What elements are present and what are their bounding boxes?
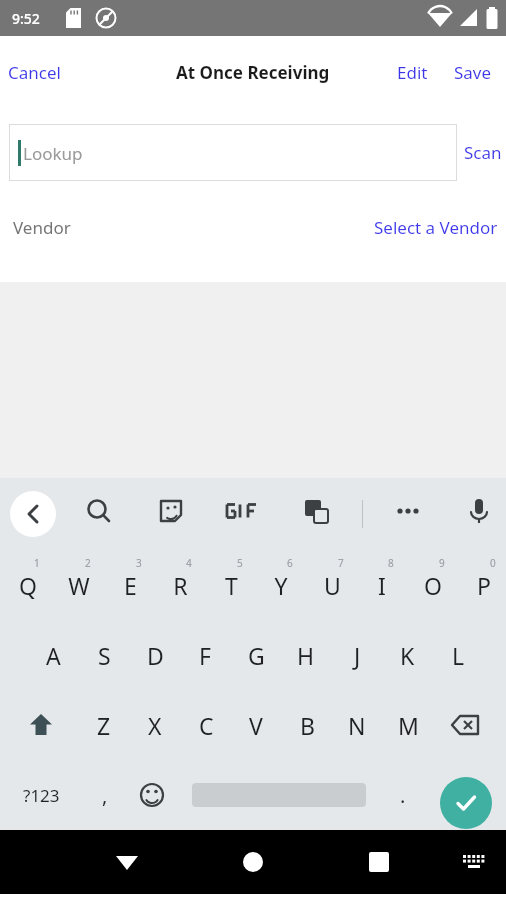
- button[interactable]: Done: [440, 777, 492, 829]
- button[interactable]: Q: [3, 550, 53, 620]
- button[interactable]: E: [105, 550, 155, 620]
- staticText: 1: [34, 556, 40, 570]
- staticText: I: [378, 570, 386, 601]
- button[interactable]: Hide keyboard: [101, 836, 153, 888]
- staticText: 8: [388, 556, 394, 570]
- staticText: 4: [186, 556, 192, 570]
- button[interactable]: GIF: [221, 490, 263, 532]
- button[interactable]: Recent apps: [353, 836, 405, 888]
- button[interactable]: Stickers: [150, 490, 192, 532]
- staticText: 7: [338, 556, 344, 570]
- staticText: 5: [237, 556, 243, 570]
- button[interactable]: Lookup: [9, 124, 457, 181]
- staticText: P: [477, 570, 491, 601]
- button[interactable]: W: [54, 550, 104, 620]
- staticText: A: [46, 640, 61, 671]
- button[interactable]: N: [332, 690, 382, 760]
- staticText: At Once Receiving: [176, 61, 330, 84]
- staticText: Select a Vendor: [374, 216, 498, 239]
- staticText: 3: [136, 556, 142, 570]
- staticText: 2: [85, 556, 91, 570]
- button[interactable]: B: [282, 690, 332, 760]
- button[interactable]: R: [155, 550, 205, 620]
- button[interactable]: C: [181, 690, 231, 760]
- staticText: Scan: [464, 141, 502, 164]
- button[interactable]: Y: [256, 550, 306, 620]
- button[interactable]: Shift: [16, 690, 66, 760]
- button[interactable]: V: [231, 690, 281, 760]
- staticText: D: [147, 640, 164, 671]
- button[interactable]: M: [383, 690, 433, 760]
- staticText: 6: [287, 556, 293, 570]
- staticText: K: [400, 640, 415, 671]
- staticText: Z: [97, 710, 111, 741]
- staticText: Edit: [397, 61, 428, 84]
- staticText: .: [400, 782, 406, 809]
- button[interactable]: Vendor: [9, 212, 75, 243]
- staticText: L: [452, 640, 465, 671]
- staticText: X: [148, 710, 162, 741]
- staticText: Save: [454, 61, 492, 84]
- button[interactable]: ,: [82, 760, 128, 830]
- staticText: T: [225, 570, 238, 601]
- staticText: E: [124, 570, 137, 601]
- button[interactable]: A: [28, 620, 78, 690]
- button[interactable]: H: [281, 620, 331, 690]
- staticText: G: [248, 640, 265, 671]
- button[interactable]: T: [206, 550, 256, 620]
- button[interactable]: Backspace: [440, 690, 490, 760]
- staticText: F: [199, 640, 211, 671]
- button[interactable]: Emoji: [129, 760, 175, 830]
- button[interactable]: Scan: [460, 124, 506, 181]
- staticText: H: [297, 640, 315, 671]
- staticText: U: [324, 570, 341, 601]
- staticText: 0: [490, 556, 496, 570]
- staticText: C: [199, 710, 214, 741]
- staticText: V: [249, 710, 263, 741]
- staticText: Y: [274, 570, 288, 601]
- staticText: ?123: [23, 784, 60, 807]
- button[interactable]: K: [382, 620, 432, 690]
- staticText: Q: [19, 570, 37, 601]
- staticText: B: [300, 710, 315, 741]
- staticText: J: [354, 640, 361, 671]
- staticText: N: [348, 710, 366, 741]
- button[interactable]: Select a Vendor: [370, 212, 502, 243]
- button[interactable]: Translate: [295, 490, 337, 532]
- button[interactable]: F: [180, 620, 230, 690]
- staticText: Lookup: [23, 142, 83, 165]
- button[interactable]: G: [231, 620, 281, 690]
- button[interactable]: Edit: [389, 53, 436, 92]
- button[interactable]: J: [332, 620, 382, 690]
- button[interactable]: ?123: [4, 760, 78, 830]
- button[interactable]: Home: [227, 836, 279, 888]
- button[interactable]: X: [130, 690, 180, 760]
- button[interactable]: Switch keyboard: [452, 840, 496, 884]
- button[interactable]: Close toolbar: [10, 491, 56, 537]
- button[interactable]: U: [307, 550, 357, 620]
- staticText: Cancel: [8, 61, 61, 84]
- staticText: O: [424, 570, 442, 601]
- button[interactable]: Z: [79, 690, 129, 760]
- button[interactable]: L: [433, 620, 483, 690]
- button[interactable]: .: [380, 760, 426, 830]
- button[interactable]: More options: [387, 490, 429, 532]
- button[interactable]: D: [130, 620, 180, 690]
- button[interactable]: S: [79, 620, 129, 690]
- staticText: Vendor: [13, 216, 71, 239]
- button[interactable]: Voice input: [458, 490, 500, 532]
- button[interactable]: P: [459, 550, 506, 620]
- staticText: S: [98, 640, 111, 671]
- button[interactable]: I: [357, 550, 407, 620]
- button[interactable]: Search: [78, 490, 120, 532]
- staticText: M: [398, 710, 419, 741]
- staticText: 9:52: [12, 9, 40, 28]
- button[interactable]: Cancel: [0, 53, 69, 92]
- staticText: W: [68, 570, 90, 601]
- staticText: R: [173, 570, 188, 601]
- button[interactable]: Save: [446, 53, 500, 92]
- staticText: ,: [102, 782, 108, 809]
- staticText: 9: [439, 556, 445, 570]
- button[interactable]: O: [408, 550, 458, 620]
